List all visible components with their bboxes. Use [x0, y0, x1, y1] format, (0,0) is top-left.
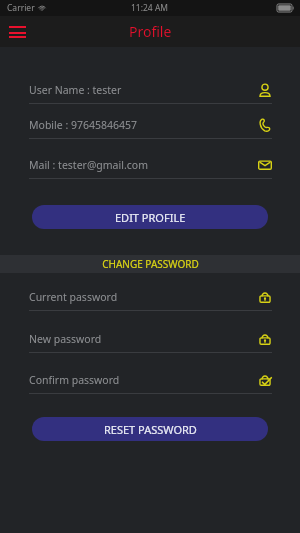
button[interactable]: New password — [0, 329, 300, 353]
button[interactable]: Mobile : 97645846457 — [0, 115, 300, 139]
staticText: New password — [29, 332, 258, 346]
staticText: User Name : tester — [29, 83, 258, 97]
staticText: Confirm password — [29, 373, 258, 387]
staticText: Mobile : 97645846457 — [29, 118, 258, 132]
button[interactable]: Current password — [0, 287, 300, 311]
button[interactable]: EDIT PROFILE — [32, 205, 268, 229]
staticText: 11:24 AM — [131, 2, 169, 14]
staticText: CHANGE PASSWORD — [102, 257, 199, 271]
staticText: Carrier — [7, 2, 35, 14]
button[interactable]: RESET PASSWORD — [32, 417, 268, 441]
button[interactable]: User Name : tester — [0, 80, 300, 104]
staticText: Current password — [29, 290, 258, 304]
staticText: RESET PASSWORD — [104, 422, 197, 437]
staticText: Profile — [129, 22, 172, 41]
button[interactable]: Confirm password — [0, 370, 300, 394]
button[interactable]: Mail : tester@gmail.com — [0, 155, 300, 179]
button[interactable]: Menu — [0, 16, 34, 47]
staticText: Mail : tester@gmail.com — [29, 158, 258, 172]
staticText: EDIT PROFILE — [115, 210, 186, 225]
